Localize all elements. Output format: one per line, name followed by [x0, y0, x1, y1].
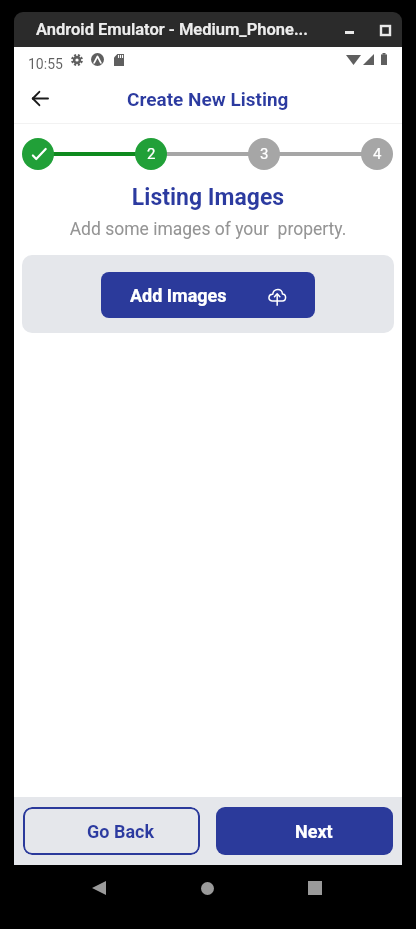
button[interactable]: Go Back	[23, 807, 200, 855]
staticText: Create New Listing	[127, 88, 289, 110]
button[interactable]: Back	[67, 856, 131, 920]
staticText: 10:55	[28, 56, 63, 72]
staticText: Listing Images	[14, 184, 402, 211]
staticText: Add some images of your property.	[14, 219, 402, 240]
staticText: Add Images	[130, 285, 227, 306]
button[interactable]: Next	[216, 807, 393, 855]
button[interactable]: Home	[175, 856, 239, 920]
staticText: Next	[295, 821, 333, 842]
button[interactable]: 4	[361, 138, 393, 170]
button[interactable]: Back	[18, 76, 62, 120]
button[interactable]: Add Images	[101, 272, 315, 318]
staticText: 2	[147, 145, 156, 163]
staticText: 4	[373, 145, 382, 163]
button[interactable]: 3	[248, 138, 280, 170]
staticText: Android Emulator - Medium_Phone...	[36, 20, 308, 39]
button[interactable]: Recents	[283, 856, 347, 920]
staticText: Go Back	[87, 821, 155, 842]
button[interactable]: 2	[135, 138, 167, 170]
staticText: 3	[260, 145, 269, 163]
button[interactable]: Minimize	[330, 12, 364, 47]
button[interactable]: Maximize	[366, 12, 400, 47]
